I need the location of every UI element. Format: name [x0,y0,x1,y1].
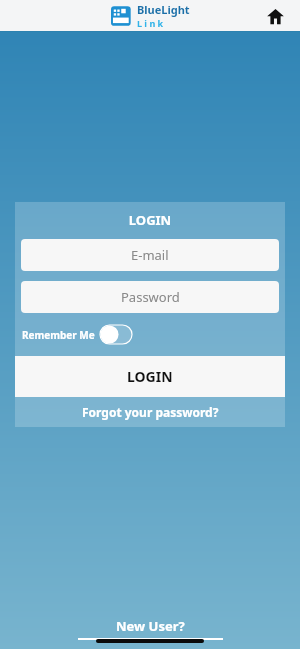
staticText: LOGIN [127,367,173,386]
button[interactable]: LOGIN [15,356,285,397]
button[interactable]: Password [21,281,279,313]
button[interactable]: Forgot your password? [15,397,285,427]
staticText: Remember Me [22,328,95,342]
staticText: L i n k [137,17,164,29]
staticText: E-mail [131,246,169,264]
button[interactable]: New User? [0,617,300,635]
staticText: New User? [116,617,185,635]
button[interactable]: E-mail [21,239,279,271]
button[interactable]: Remember Me toggle [100,325,132,344]
staticText: Password [121,288,180,306]
staticText: LOGIN [15,211,285,229]
button[interactable]: Home [262,3,288,29]
staticText: BlueLight [137,2,190,17]
button[interactable]: Remember Me [22,325,285,344]
staticText: Forgot your password? [82,404,219,420]
